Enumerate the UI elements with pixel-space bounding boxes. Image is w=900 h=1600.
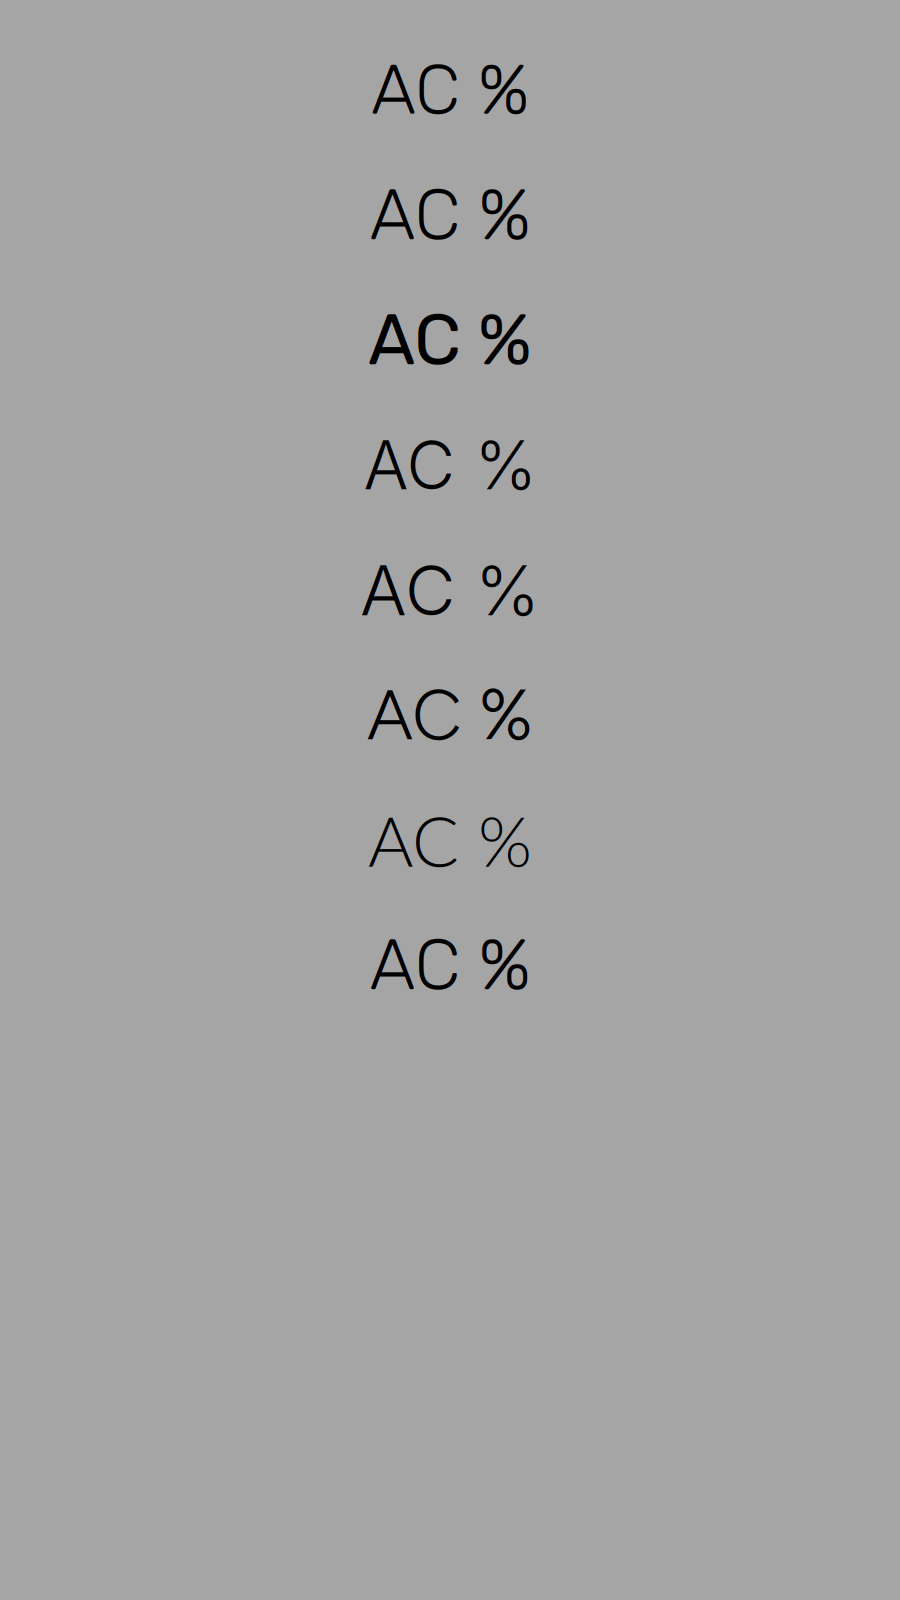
staticText: AC % [368,798,532,882]
staticText: AC % [368,298,532,382]
staticText: AC % [369,173,530,257]
staticText: AC % [360,548,540,632]
staticText: AC % [363,425,536,505]
staticText: AC % [369,923,530,1007]
staticText: AC % [367,673,533,757]
staticText: AC % [371,49,529,131]
